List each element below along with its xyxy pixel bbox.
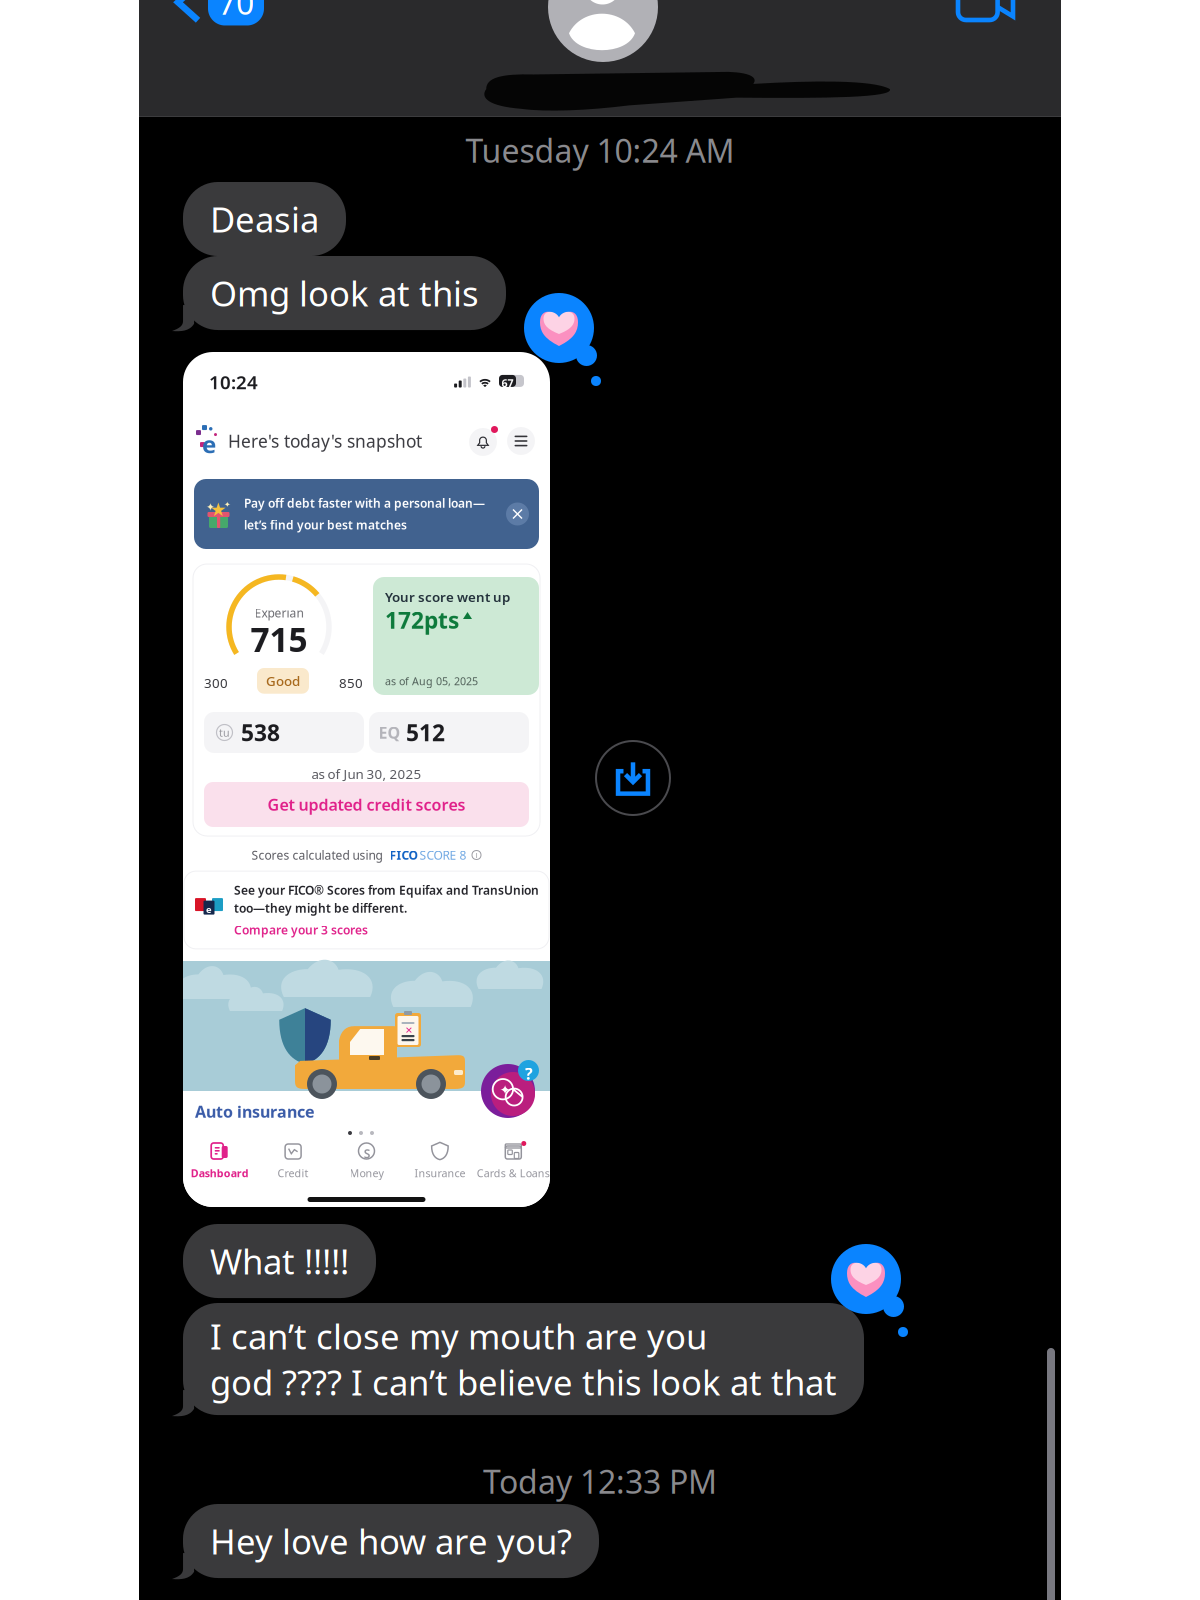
staticText: 715 bbox=[250, 617, 307, 661]
staticText: What !!!!! bbox=[210, 1238, 349, 1284]
staticText: Here's today's snapshot bbox=[228, 429, 422, 452]
staticText: let’s find your best matches bbox=[244, 517, 407, 533]
staticText: 538 bbox=[241, 717, 280, 747]
button[interactable]: S bbox=[330, 1141, 403, 1180]
staticText: 70 bbox=[218, 0, 254, 23]
staticText: god ???? I can’t believe this look at th… bbox=[210, 1359, 837, 1405]
staticText: Get updated credit scores bbox=[267, 794, 465, 815]
staticText: Scores calculated using bbox=[251, 847, 382, 863]
button[interactable]: Insurance bbox=[403, 1141, 477, 1180]
staticText: ? bbox=[525, 1063, 533, 1084]
button[interactable]: Menu bbox=[505, 425, 537, 457]
staticText: Money bbox=[349, 1166, 383, 1180]
staticText: 172pts bbox=[385, 605, 459, 635]
staticText: Compare your 3 scores bbox=[234, 922, 368, 938]
staticText: Insurance bbox=[414, 1166, 465, 1180]
button[interactable]: Save image bbox=[594, 739, 672, 817]
staticText: ✦ bbox=[499, 1082, 510, 1097]
button[interactable]: Credit bbox=[256, 1141, 330, 1180]
staticText: as of Aug 05, 2025 bbox=[385, 674, 478, 688]
staticText: See your FICO® Scores from Equifax and T… bbox=[234, 882, 539, 898]
staticText: SCORE 8 bbox=[419, 847, 466, 863]
staticText: ✦ bbox=[206, 501, 215, 513]
staticText: Experian bbox=[254, 605, 303, 621]
staticText: Tuesday 10:24 AM bbox=[465, 129, 734, 171]
button[interactable]: e bbox=[184, 871, 549, 949]
staticText: Today 12:33 PM bbox=[483, 1460, 717, 1502]
staticText: Pay off debt faster with a personal loan… bbox=[244, 495, 485, 511]
staticText: 512 bbox=[406, 717, 445, 747]
staticText: e bbox=[206, 903, 212, 915]
staticText: Good bbox=[266, 672, 300, 690]
staticText: Deasia bbox=[210, 196, 319, 242]
staticText: i bbox=[475, 850, 477, 860]
staticText: 67 bbox=[501, 376, 513, 390]
staticText: Cards & Loans bbox=[477, 1166, 550, 1180]
staticText: e bbox=[202, 428, 216, 460]
staticText: Dashboard bbox=[191, 1166, 249, 1180]
staticText: FICO bbox=[389, 847, 417, 863]
staticText: Your score went up bbox=[385, 588, 510, 606]
staticText: EQ bbox=[378, 722, 400, 743]
staticText: 850 bbox=[339, 674, 363, 692]
staticText: tu bbox=[219, 725, 230, 740]
button[interactable]: Cards & Loans bbox=[477, 1141, 550, 1180]
staticText: S bbox=[364, 1146, 371, 1161]
staticText: as of Jun 30, 2025 bbox=[311, 765, 421, 783]
staticText: ★ bbox=[210, 499, 227, 520]
staticText: Credit bbox=[278, 1166, 309, 1180]
button[interactable]: Notifications bbox=[467, 425, 499, 457]
button[interactable]: Back bbox=[178, 0, 264, 25]
button[interactable]: ✦ bbox=[194, 479, 539, 549]
button[interactable]: FaceTime call bbox=[958, 0, 1013, 20]
staticText: Hey love how are you? bbox=[210, 1518, 572, 1564]
staticText: Omg look at this bbox=[210, 270, 479, 316]
button[interactable]: Get updated credit scores bbox=[204, 782, 529, 827]
staticText: ✕ bbox=[405, 1025, 413, 1036]
staticText: I can’t close my mouth are you bbox=[210, 1313, 707, 1359]
staticText: ✦ bbox=[224, 500, 231, 509]
staticText: 300 bbox=[204, 674, 228, 692]
staticText: 10:24 bbox=[209, 370, 258, 394]
staticText: too—they might be different. bbox=[234, 900, 407, 916]
button[interactable]: Dashboard bbox=[183, 1141, 256, 1180]
staticText: Auto insurance bbox=[195, 1101, 315, 1122]
